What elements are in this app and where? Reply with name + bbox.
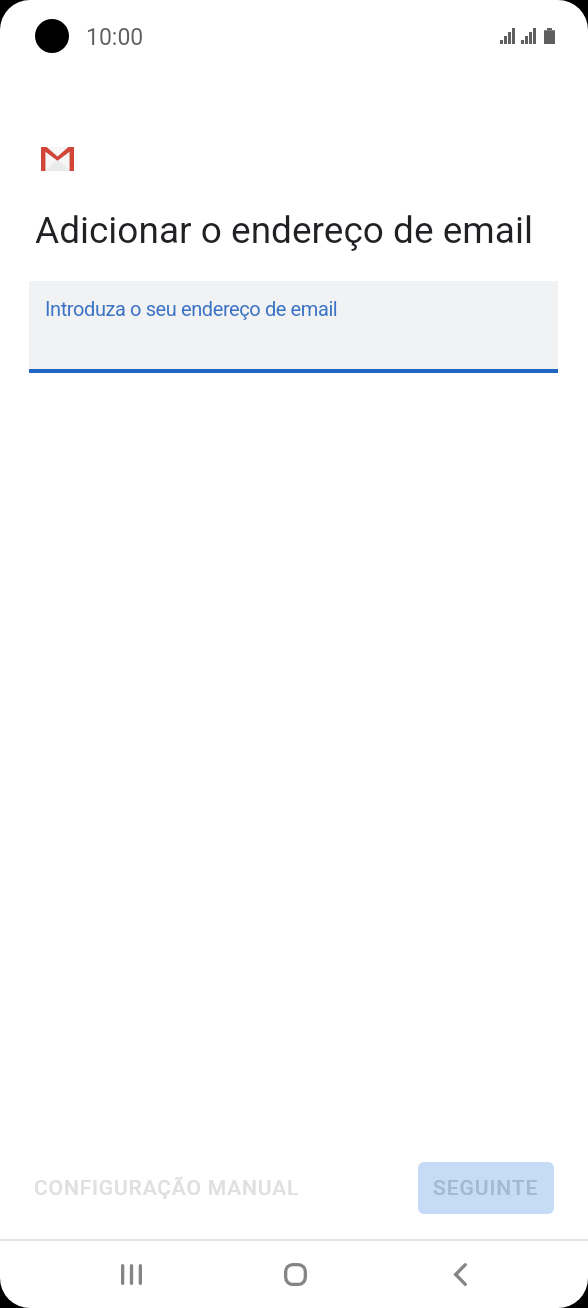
button[interactable]: CONFIGURAÇÃO MANUAL (17, 1162, 317, 1214)
button[interactable]: Introduza o seu endereço de email (29, 281, 558, 373)
button[interactable]: Recents (49, 1240, 213, 1308)
staticText: CONFIGURAÇÃO MANUAL (34, 1176, 300, 1201)
staticText: SEGUINTE (433, 1176, 539, 1201)
staticText: Adicionar o endereço de email (35, 209, 533, 252)
button[interactable]: Back (378, 1240, 542, 1308)
staticText: 10:00 (86, 24, 144, 51)
button[interactable]: Home (213, 1240, 377, 1308)
staticText: Introduza o seu endereço de email (45, 297, 338, 320)
button[interactable]: SEGUINTE (418, 1162, 554, 1214)
